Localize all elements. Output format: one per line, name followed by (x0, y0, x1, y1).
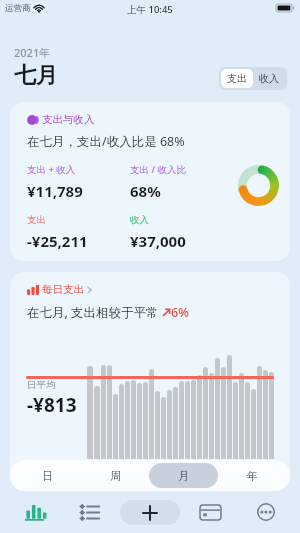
staticText: 日 (42, 469, 53, 483)
staticText: 上午 10:45 (127, 3, 173, 16)
staticText: 收入 (130, 214, 149, 226)
staticText: -¥25,211 (27, 231, 88, 251)
staticText: -¥813 (27, 392, 77, 418)
staticText: 2021年 (14, 45, 51, 60)
staticText: 支出 / 收入比 (130, 163, 187, 176)
staticText: 运营商 (5, 3, 31, 14)
staticText: 七月 (14, 62, 58, 90)
button[interactable]: 周 (81, 463, 149, 488)
staticText: 每日支出 (42, 283, 84, 296)
button[interactable]: Cards (183, 491, 238, 533)
staticText: 支出 (27, 214, 46, 226)
staticText: ¥37,000 (130, 231, 186, 251)
staticText: 支出 (227, 72, 247, 85)
button[interactable]: 支出与收入 (10, 102, 290, 261)
button[interactable]: More (238, 491, 293, 533)
staticText: ¥11,789 (27, 181, 83, 201)
button[interactable]: 日 (13, 463, 81, 488)
button[interactable]: 每日支出 (10, 272, 290, 491)
staticText: 在七月，支出/收入比是 68% (27, 133, 185, 150)
button[interactable]: Summary (7, 491, 62, 533)
button[interactable]: 年 (218, 463, 287, 488)
staticText: 周 (110, 469, 121, 483)
staticText: 68% (130, 181, 161, 201)
staticText: 在七月, 支出相较于平常 (27, 304, 162, 321)
staticText: 年 (247, 469, 258, 483)
button[interactable]: 支出 (221, 69, 253, 88)
staticText: 6% (171, 304, 189, 321)
staticText: 支出 + 收入 (27, 163, 76, 176)
button[interactable]: 月 (149, 463, 218, 488)
staticText: 月 (178, 469, 189, 483)
button[interactable]: 收入 (253, 69, 285, 88)
staticText: 收入 (259, 72, 279, 85)
button[interactable]: Transactions (62, 491, 117, 533)
button[interactable]: Add transaction (120, 500, 180, 525)
staticText: 支出与收入 (42, 113, 95, 126)
staticText: 日平均 (27, 379, 56, 391)
